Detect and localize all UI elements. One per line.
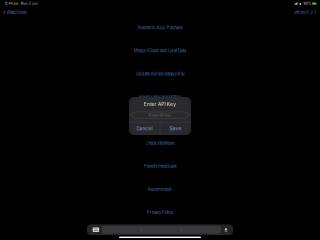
button[interactable]: Restore In-App Purchase (0, 16, 320, 39)
staticText: Merge iCloud and Local Data (134, 48, 186, 53)
staticText: Check Info/News (145, 141, 174, 146)
button[interactable]: Watchlists (0, 9, 29, 16)
staticText: version 2.1 (294, 10, 316, 15)
staticText: Export Watchlist Data (141, 118, 179, 123)
button[interactable]: Provide Feedback (0, 155, 320, 178)
staticText: Restore In-App Purchase (137, 25, 182, 30)
button[interactable]: Check Info/News (0, 132, 320, 155)
staticText: Update AlphaVantage Key (135, 71, 184, 76)
staticText: Save (170, 126, 182, 131)
staticText: Cancel (136, 126, 152, 131)
staticText: 12:44 pm Mon 3 Jun (5, 2, 38, 5)
staticText: Provide Feedback (143, 164, 176, 169)
button[interactable]: Export Watchlist Data (0, 109, 320, 132)
staticText: 100% (303, 2, 311, 5)
staticText: Privacy Policy (147, 210, 173, 215)
button[interactable]: Update AlphaVantage Key (0, 62, 320, 85)
button[interactable]: Show keyboard (92, 227, 99, 232)
button[interactable]: Privacy Policy (0, 201, 320, 224)
button[interactable]: Recommend (0, 178, 320, 201)
button[interactable]: Reset Sample Portfolio (0, 85, 320, 109)
button[interactable]: version 2.1 (294, 9, 320, 16)
button[interactable]: Cancel (129, 122, 160, 135)
staticText: Recommend (148, 187, 172, 192)
staticText: Watchlists (7, 10, 27, 15)
button[interactable]: Dictate (224, 228, 227, 231)
staticText: Enter API Key (150, 113, 171, 117)
staticText: Enter API Key (144, 101, 176, 107)
button[interactable]: Save (160, 122, 191, 135)
button[interactable]: Merge iCloud and Local Data (0, 39, 320, 62)
staticText: Reset Sample Portfolio (139, 94, 181, 99)
